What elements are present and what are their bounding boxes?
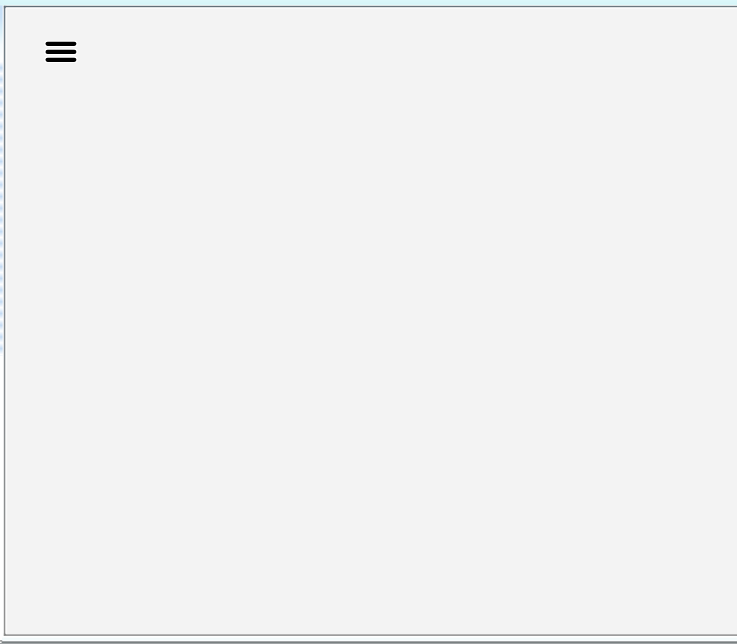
button[interactable]: Open navigation menu	[43, 37, 81, 65]
